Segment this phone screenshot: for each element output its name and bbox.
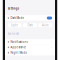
staticText: Light [11, 23, 18, 27]
staticText: › [51, 45, 52, 49]
staticText: Auto [42, 23, 49, 27]
staticText: Night Mode [10, 51, 27, 54]
staticText: Appearance [10, 45, 26, 49]
staticText: Notifications [10, 40, 27, 44]
button[interactable]: Appearance [5, 45, 55, 50]
staticText: › [51, 51, 52, 54]
staticText: Settings [8, 7, 19, 10]
button[interactable]: Notifications [5, 39, 55, 45]
staticText: General [8, 32, 19, 35]
staticText: › [51, 40, 52, 44]
button[interactable]: Night Mode [5, 50, 55, 55]
button[interactable]: Dark [23, 23, 37, 27]
button[interactable]: Light [8, 23, 21, 27]
staticText: Dark Mode [10, 16, 24, 20]
staticText: Dark [27, 23, 32, 27]
button[interactable]: Auto [39, 23, 52, 27]
